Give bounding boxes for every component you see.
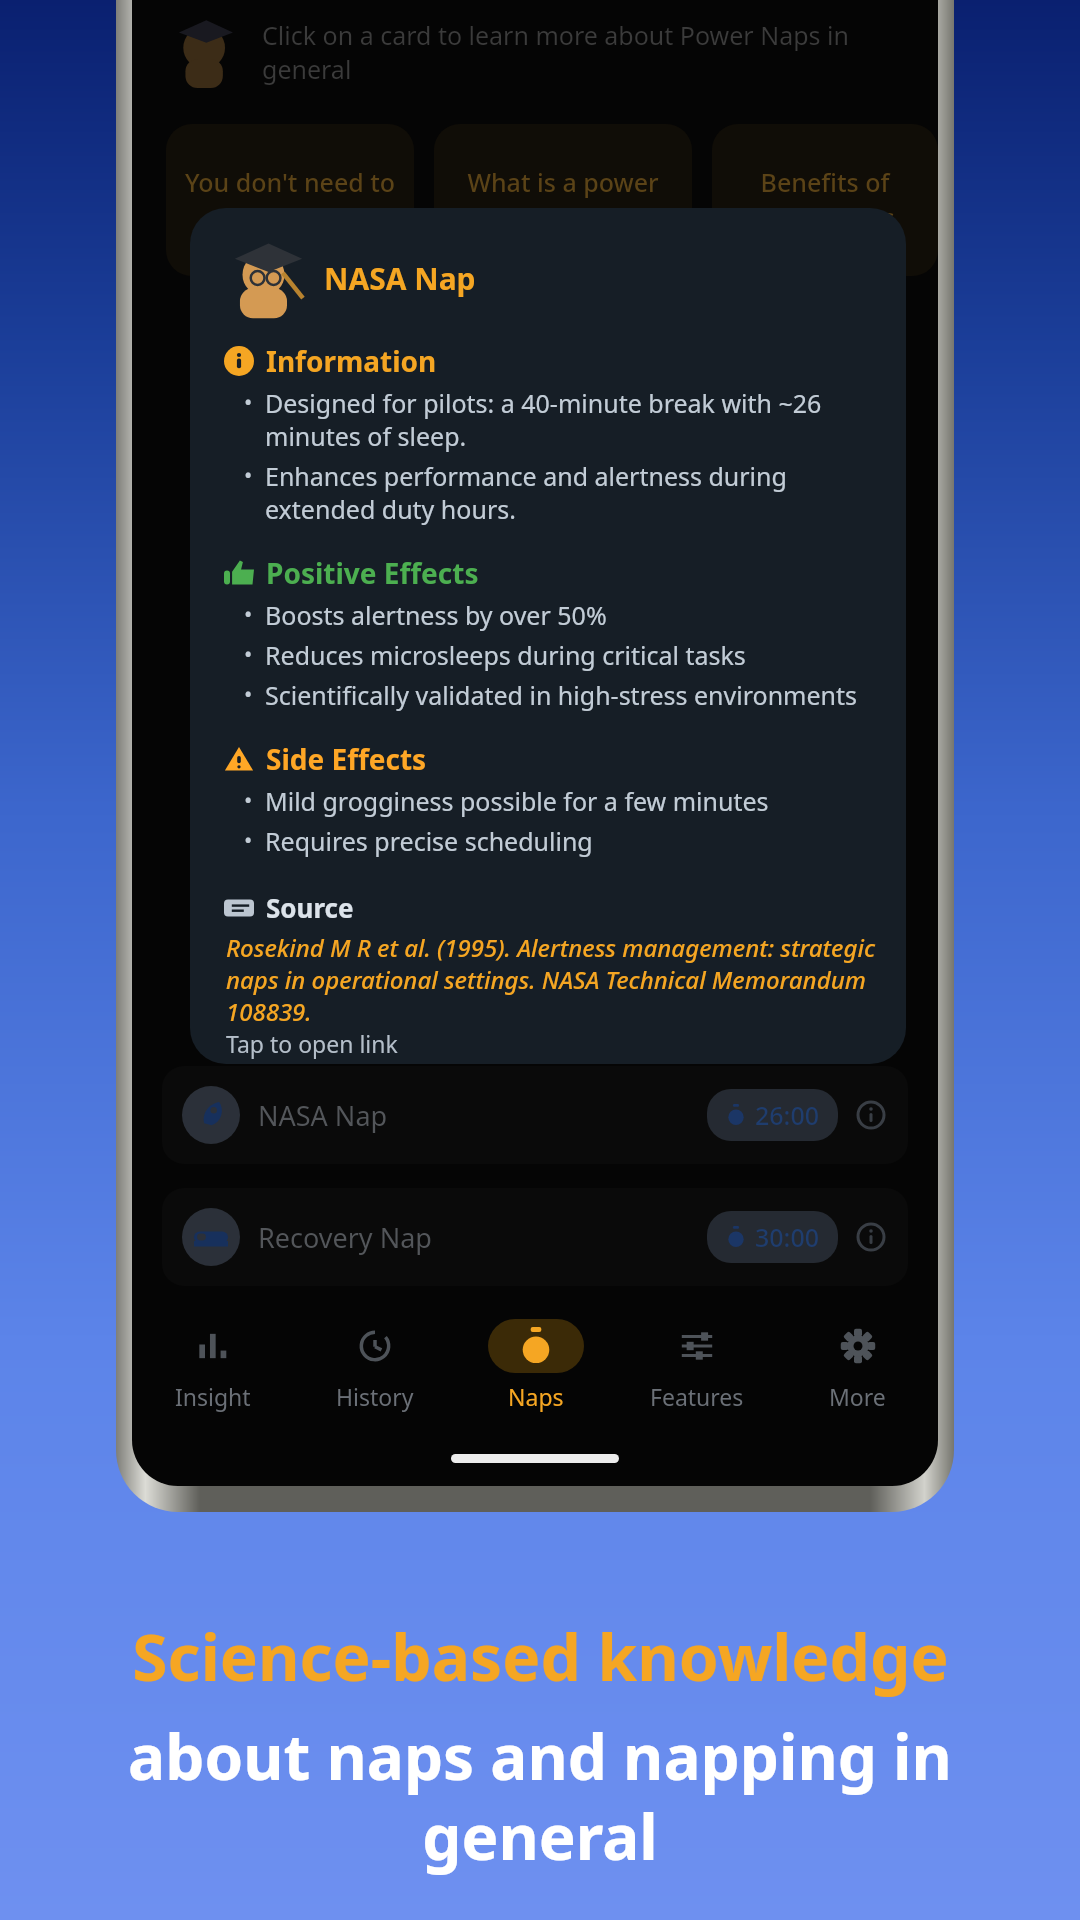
staticText: NASA Nap <box>324 258 476 299</box>
staticText: Benefits of power naps <box>726 165 924 235</box>
staticText: Recovery Nap <box>258 1219 432 1256</box>
staticText: • <box>244 386 253 416</box>
staticText: Information <box>266 342 437 380</box>
button[interactable]: NASA Nap <box>190 208 906 1064</box>
button[interactable]: Rosekind M R et al. (1995). Alertness ma… <box>226 931 878 1059</box>
button[interactable]: 30:00 <box>707 1211 838 1263</box>
staticText: • <box>244 638 253 668</box>
staticText: Requires precise scheduling <box>265 824 593 858</box>
staticText: You don't need to force sleep <box>180 165 400 235</box>
button[interactable]: Insight <box>132 1300 294 1430</box>
staticText: Features <box>650 1381 744 1412</box>
button[interactable]: Recovery Nap <box>162 1188 908 1286</box>
staticText: Click on a card to learn more about Powe… <box>262 18 904 86</box>
staticText: What is a power nap? <box>448 165 678 235</box>
staticText: More <box>829 1381 886 1412</box>
staticText: History <box>336 1381 414 1412</box>
staticText: • <box>244 678 253 708</box>
staticText: NASA Nap <box>258 1097 388 1134</box>
staticText: Scientifically validated in high-stress … <box>265 678 858 712</box>
staticText: • <box>244 784 253 814</box>
staticText: Side Effects <box>266 740 427 778</box>
button[interactable]: History <box>294 1300 455 1430</box>
button[interactable]: More <box>777 1300 938 1430</box>
staticText: Reduces microsleeps during critical task… <box>265 638 746 672</box>
staticText: 26:00 <box>755 1098 820 1132</box>
button[interactable]: Features <box>616 1300 777 1430</box>
staticText: Mild grogginess possible for a few minut… <box>265 784 769 818</box>
button[interactable]: You don't need to force sleep <box>166 124 414 276</box>
staticText: Source <box>266 890 354 925</box>
staticText: Science-based knowledge <box>132 1613 949 1700</box>
button[interactable]: Information <box>854 1220 888 1254</box>
button[interactable]: NASA Nap <box>162 1066 908 1164</box>
staticText: Insight <box>175 1381 251 1412</box>
button[interactable]: 26:00 <box>707 1089 838 1141</box>
button[interactable]: Naps <box>455 1300 616 1430</box>
staticText: Enhances performance and alertness durin… <box>265 459 878 526</box>
staticText: Positive Effects <box>266 554 479 592</box>
button[interactable]: What is a power nap? <box>434 124 692 276</box>
staticText: about naps and napping in general <box>22 1714 1058 1878</box>
staticText: Designed for pilots: a 40-minute break w… <box>265 386 878 453</box>
staticText: 30:00 <box>755 1220 820 1254</box>
staticText: Boosts alertness by over 50% <box>265 598 607 632</box>
staticText: Tap to open link <box>226 1028 398 1059</box>
staticText: • <box>244 824 253 854</box>
button[interactable]: Information <box>854 1098 888 1132</box>
staticText: • <box>244 598 253 628</box>
staticText: Rosekind M R et al. (1995). Alertness ma… <box>226 931 878 1028</box>
staticText: • <box>244 459 253 489</box>
staticText: Naps <box>508 1381 564 1412</box>
button[interactable]: Benefits of power naps <box>712 124 938 276</box>
